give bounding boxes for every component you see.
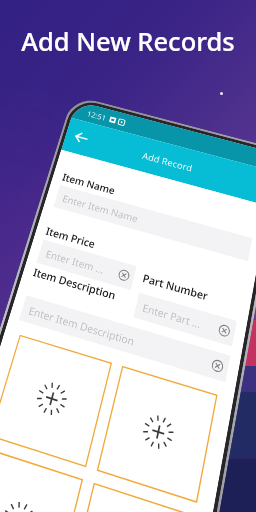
staticText: Enter Part ... [141,300,202,331]
button[interactable]: Enter Item ... [36,239,137,290]
button[interactable]: Add photo [66,484,194,512]
staticText: Item Price [44,224,97,251]
staticText: Enter Item ... [44,246,106,276]
staticText: Item Description [31,265,118,303]
staticText: Part Number [141,271,210,304]
staticText: 12:51 [86,109,108,123]
button[interactable]: Add photo [0,335,111,466]
button[interactable]: Add photo [97,367,217,502]
staticText: Enter Item Name [61,191,140,225]
button[interactable]: Enter Part ... [133,293,237,346]
staticText: Add Record [141,149,194,174]
staticText: Enter Item Description [27,303,136,348]
staticText: Item Name [61,170,117,198]
button[interactable]: Enter Item Name [53,185,252,261]
button[interactable]: Clear [217,323,231,338]
staticText: Add New Records [0,24,256,59]
button[interactable]: Enter Item Description [19,295,230,382]
button[interactable]: Clear [117,268,131,282]
button[interactable]: Back [71,128,92,148]
button[interactable]: Add photo [0,449,82,512]
button[interactable]: Clear [211,358,224,374]
